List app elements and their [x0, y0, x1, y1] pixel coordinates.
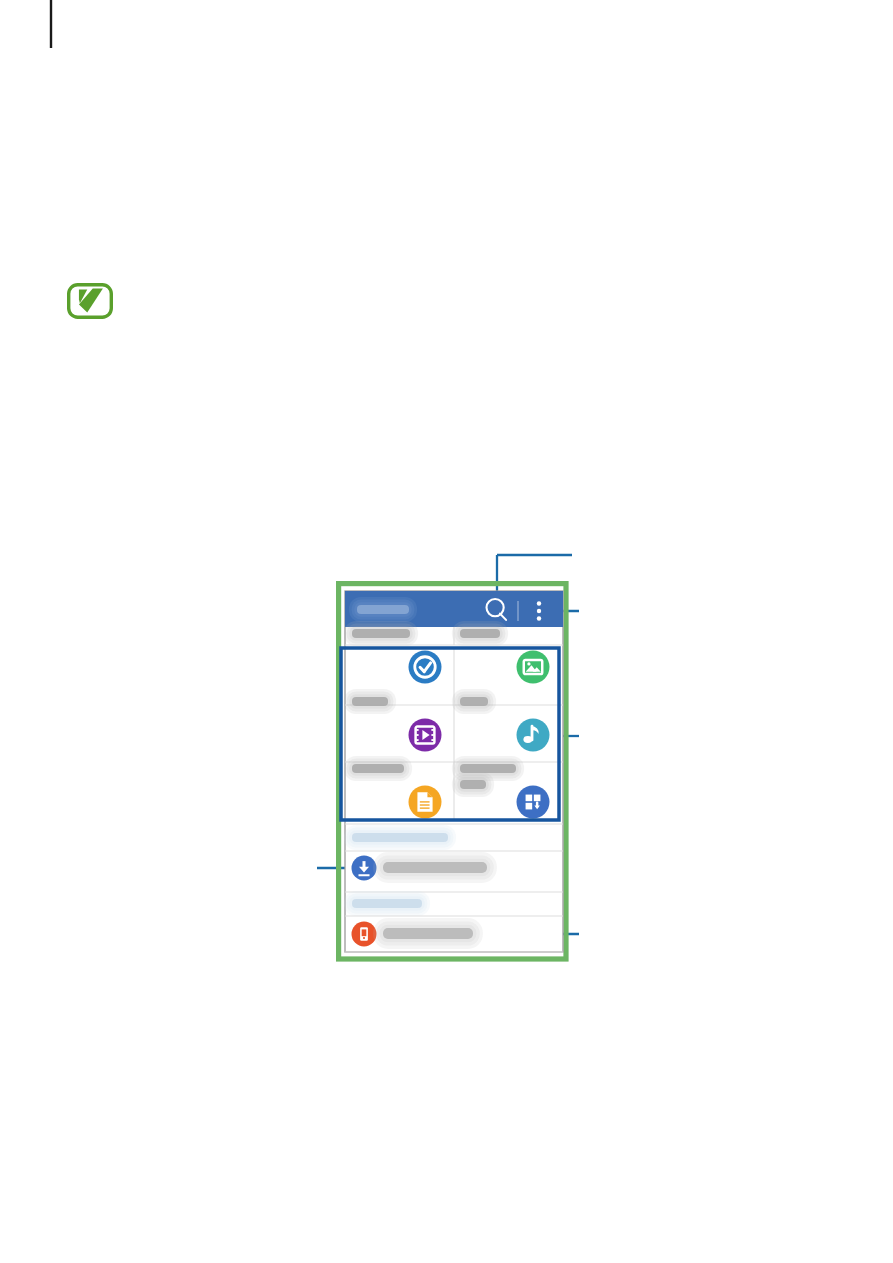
button[interactable]: Recent files	[345, 648, 454, 705]
button[interactable]: More options	[528, 598, 552, 624]
button[interactable]: Audio	[454, 705, 563, 762]
button[interactable]: Downloaded apps	[454, 762, 563, 819]
button[interactable]: Search	[486, 599, 510, 623]
button[interactable]: Videos	[345, 705, 454, 762]
button[interactable]: Images	[454, 648, 563, 705]
button[interactable]: Device storage	[345, 916, 563, 952]
button[interactable]: Documents	[345, 762, 454, 819]
button[interactable]: Download history	[345, 851, 563, 892]
